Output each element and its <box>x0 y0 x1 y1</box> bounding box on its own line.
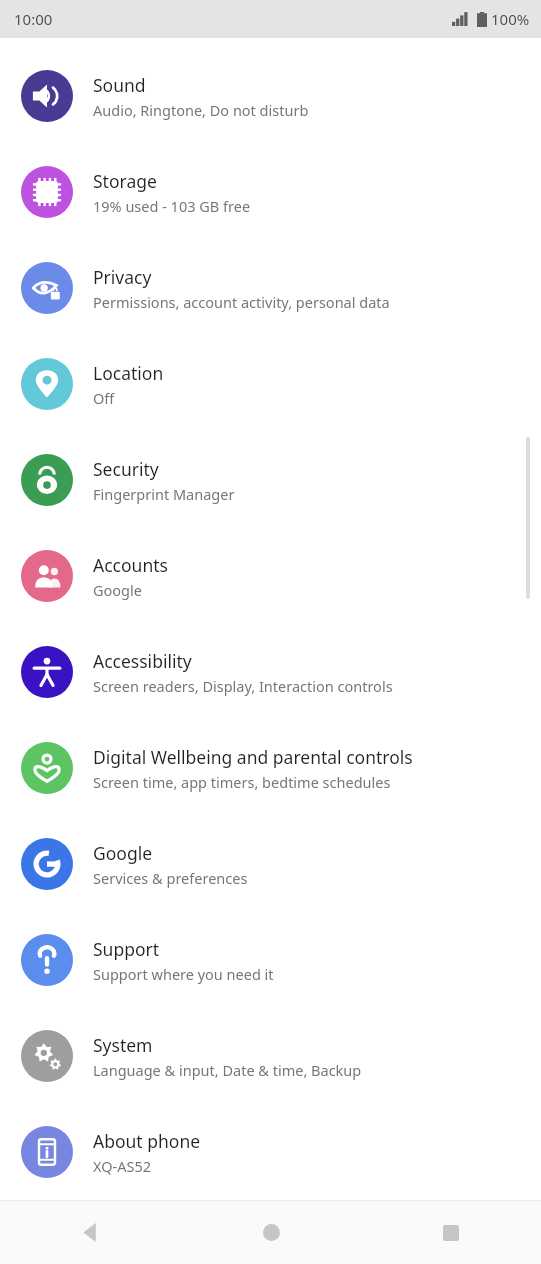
staticText: Support <box>93 937 160 961</box>
staticText: Accessibility <box>93 649 192 673</box>
button[interactable]: Privacy <box>0 240 541 336</box>
staticText: Digital Wellbeing and parental controls <box>93 745 413 769</box>
staticText: Security <box>93 457 159 481</box>
staticText: 19% used - 103 GB free <box>93 196 251 216</box>
button[interactable]: Back <box>0 1201 181 1264</box>
button[interactable]: Google <box>0 816 541 912</box>
staticText: Audio, Ringtone, Do not disturb <box>93 100 309 120</box>
staticText: Services & preferences <box>93 868 248 888</box>
button[interactable]: System <box>0 1008 541 1104</box>
button[interactable]: Storage <box>0 144 541 240</box>
staticText: Storage <box>93 169 157 193</box>
staticText: Google <box>93 841 153 865</box>
staticText: Location <box>93 361 164 385</box>
staticText: System <box>93 1033 153 1057</box>
staticText: Accounts <box>93 553 168 577</box>
staticText: Sound <box>93 73 146 97</box>
staticText: Support where you need it <box>93 964 274 984</box>
button[interactable]: Security <box>0 432 541 528</box>
staticText: Privacy <box>93 265 152 289</box>
staticText: Google <box>93 580 142 600</box>
button[interactable]: Digital Wellbeing and parental controls <box>0 720 541 816</box>
button[interactable]: Home <box>181 1201 361 1264</box>
staticText: About phone <box>93 1129 201 1153</box>
staticText: Permissions, account activity, personal … <box>93 292 390 312</box>
staticText: Fingerprint Manager <box>93 484 235 504</box>
button[interactable]: Accessibility <box>0 624 541 720</box>
staticText: 10:00 <box>14 9 53 29</box>
staticText: 100% <box>491 9 530 29</box>
button[interactable]: Sound <box>0 48 541 144</box>
button[interactable]: Support <box>0 912 541 1008</box>
button[interactable]: About phone <box>0 1104 541 1200</box>
button[interactable]: Recent apps <box>361 1201 541 1264</box>
button[interactable]: Location <box>0 336 541 432</box>
staticText: Language & input, Date & time, Backup <box>93 1060 362 1080</box>
staticText: Screen time, app timers, bedtime schedul… <box>93 772 391 792</box>
staticText: Off <box>93 388 115 408</box>
button[interactable]: Accounts <box>0 528 541 624</box>
staticText: Screen readers, Display, Interaction con… <box>93 676 393 696</box>
staticText: XQ-AS52 <box>93 1156 152 1176</box>
